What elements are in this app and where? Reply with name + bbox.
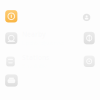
button[interactable]: Preview	[84, 56, 95, 67]
button[interactable]: Profile	[83, 14, 90, 21]
button[interactable]: Vehicle	[5, 74, 18, 87]
button[interactable]: Open app	[5, 10, 17, 22]
button[interactable]: Stations	[6, 57, 15, 66]
button[interactable]: Nearby	[5, 32, 17, 44]
button[interactable]: Details	[84, 32, 95, 44]
